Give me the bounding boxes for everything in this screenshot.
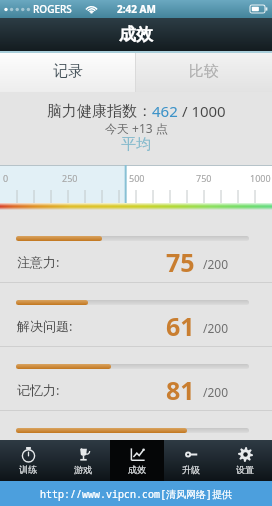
staticText: 81 xyxy=(166,373,195,407)
staticText: 训练 xyxy=(19,464,37,475)
button[interactable]: 记忆力: xyxy=(0,347,272,411)
staticText: 升级 xyxy=(182,464,200,475)
button[interactable]: 训练 xyxy=(0,440,55,481)
button[interactable]: 升级 xyxy=(164,440,218,481)
staticText: 记忆力: xyxy=(17,381,60,399)
staticText: /200 xyxy=(203,256,229,272)
staticText: 解决问题: xyxy=(17,317,73,335)
button[interactable]: 比较 xyxy=(136,53,272,92)
button[interactable]: 注意力: xyxy=(0,210,272,283)
staticText: ROGERS xyxy=(33,2,72,16)
staticText: 设置 xyxy=(236,464,254,475)
staticText: http://www.vipcn.com[清风网络]提供 xyxy=(40,487,232,501)
staticText: 记录 xyxy=(53,62,83,81)
staticText: 500 xyxy=(129,172,145,184)
staticText: 平均 xyxy=(121,135,151,154)
staticText: 成效 xyxy=(128,464,146,475)
staticText: / 1000 xyxy=(178,101,226,121)
staticText: 250 xyxy=(62,172,78,184)
staticText: /200 xyxy=(203,384,229,400)
button[interactable]: 解决问题: xyxy=(0,283,272,347)
staticText: 游戏 xyxy=(74,464,92,475)
staticText: /200 xyxy=(203,320,229,336)
other: Wi-Fi xyxy=(85,3,98,16)
staticText: 成效 xyxy=(119,24,153,45)
button[interactable]: 记录 xyxy=(0,53,135,92)
staticText: 注意力: xyxy=(17,253,60,271)
staticText: 1000 xyxy=(250,172,271,184)
staticText: 75 xyxy=(166,245,195,279)
staticText: 462 xyxy=(152,101,178,121)
staticText: 0 xyxy=(3,172,9,184)
staticText: 61 xyxy=(166,309,195,343)
button[interactable]: 设置 xyxy=(218,440,272,481)
staticText: 脑力健康指数： xyxy=(47,102,152,121)
button[interactable]: 游戏 xyxy=(55,440,110,481)
staticText: 750 xyxy=(196,172,212,184)
staticText: 比较 xyxy=(189,62,219,81)
staticText: 2:42 AM xyxy=(117,2,156,16)
button[interactable]: 成效 xyxy=(110,440,164,481)
button[interactable] xyxy=(0,411,272,433)
staticText: 今天 +13 点 xyxy=(105,120,168,136)
